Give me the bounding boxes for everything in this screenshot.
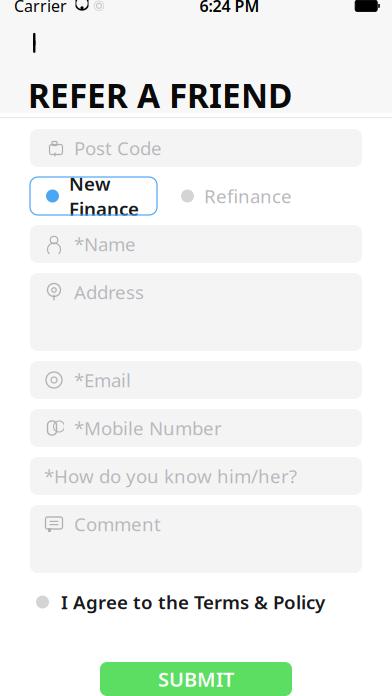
staticText: Refinance: [204, 184, 292, 208]
button[interactable]: Refinance: [165, 177, 310, 215]
staticText: New Finance: [69, 171, 139, 221]
button[interactable]: SUBMIT: [100, 662, 292, 696]
button[interactable]: Back: [0, 25, 56, 61]
button[interactable]: *Email: [30, 361, 362, 399]
staticText: *How do you know him/her?: [44, 464, 297, 488]
button[interactable]: *Name: [30, 225, 362, 263]
staticText: REFER A FRIEND: [28, 73, 292, 117]
button[interactable]: I Agree to the Terms & Policy: [30, 587, 362, 617]
staticText: *Mobile Number: [74, 416, 222, 440]
staticText: I Agree to the Terms & Policy: [61, 590, 325, 614]
staticText: Address: [74, 280, 144, 304]
button[interactable]: Post Code: [30, 129, 362, 167]
staticText: Carrier: [14, 0, 67, 16]
staticText: *Name: [74, 232, 136, 256]
staticText: Post Code: [74, 136, 162, 160]
button[interactable]: New Finance: [30, 177, 157, 215]
staticText: 6:24 PM: [199, 0, 259, 16]
button[interactable]: *How do you know him/her?: [30, 457, 362, 495]
button[interactable]: Comment: [30, 505, 362, 573]
staticText: *Email: [74, 368, 131, 392]
staticText: SUBMIT: [158, 666, 234, 692]
button[interactable]: Address: [30, 273, 362, 351]
button[interactable]: *Mobile Number: [30, 409, 362, 447]
staticText: Comment: [74, 512, 161, 536]
